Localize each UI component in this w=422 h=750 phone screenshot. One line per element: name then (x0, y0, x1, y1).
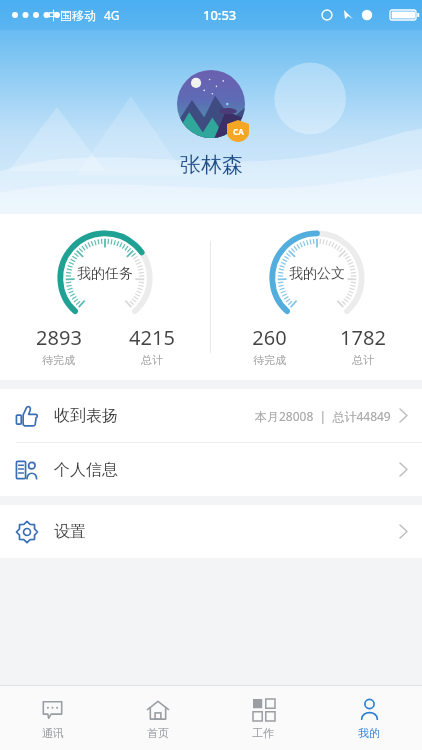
button[interactable]: 收到表扬 (0, 389, 422, 442)
staticText: 1782 (340, 324, 386, 351)
staticText: 我的 (358, 726, 380, 740)
staticText: 收到表扬 (54, 406, 118, 426)
staticText: 10:53 (203, 6, 237, 24)
staticText: 我的任务 (77, 265, 133, 283)
staticText: 我的公文 (289, 265, 345, 283)
button[interactable]: 工作 (210, 686, 316, 750)
button[interactable]: 首页 (105, 686, 210, 750)
staticText: 总计 (352, 353, 374, 367)
button[interactable]: 设置 (0, 505, 422, 558)
staticText: 4G (104, 7, 120, 23)
staticText: 本月28008 | 总计44849 (255, 408, 391, 424)
staticText: 首页 (147, 726, 169, 740)
staticText: 4215 (129, 324, 175, 351)
staticText: 通讯 (42, 726, 64, 740)
staticText: 总计 (141, 353, 163, 367)
staticText: CA (233, 126, 244, 137)
button[interactable]: 个人信息 (0, 443, 422, 496)
staticText: 260 (252, 324, 287, 351)
staticText: 待完成 (42, 353, 75, 367)
staticText: 设置 (54, 522, 86, 542)
staticText: 待完成 (253, 353, 286, 367)
staticText: 中国移动 (48, 8, 96, 23)
staticText: 个人信息 (54, 460, 118, 480)
staticText: 张林森 (180, 152, 243, 178)
staticText: 工作 (252, 726, 274, 740)
button[interactable]: 我的 (316, 686, 422, 750)
staticText: 2893 (36, 324, 82, 351)
button[interactable]: 通讯 (0, 686, 105, 750)
